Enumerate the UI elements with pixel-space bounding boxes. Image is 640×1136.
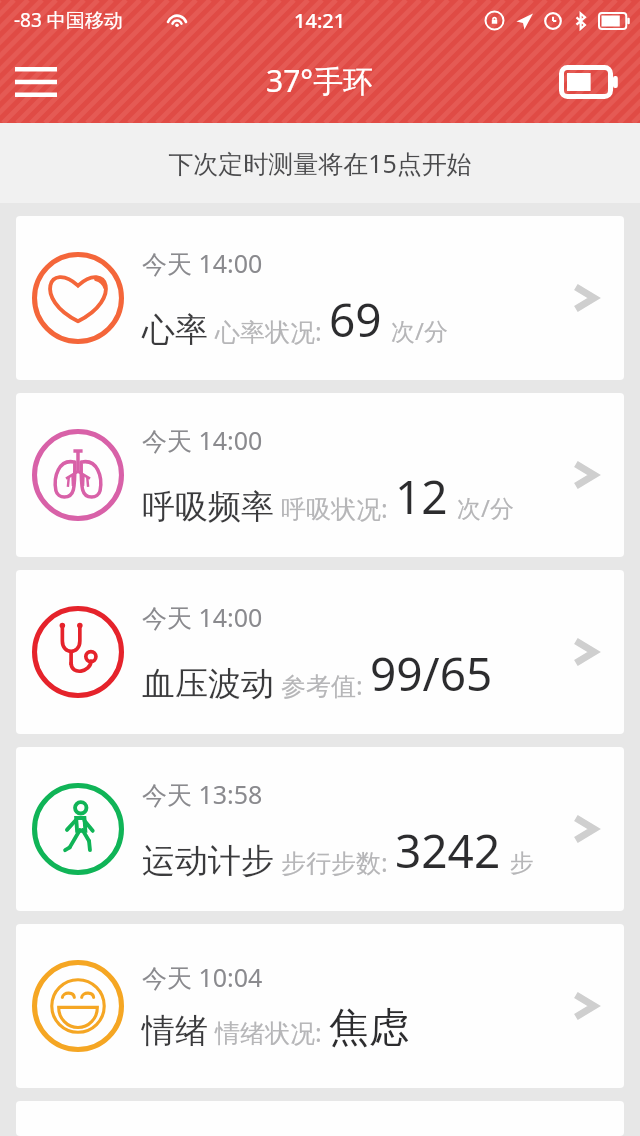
button[interactable]: 今天 14:00 [16, 216, 624, 380]
staticText: 14:21 [294, 7, 346, 34]
staticText: 情绪 [142, 1010, 208, 1052]
staticText: 今天 14:00 [142, 246, 263, 280]
staticText: 心率 [142, 309, 208, 351]
button[interactable]: Battery [550, 52, 628, 112]
staticText: 呼吸频率 [142, 486, 274, 528]
staticText: 运动计步 [142, 840, 274, 882]
staticText: 99/65 [370, 642, 493, 705]
staticText: 参考值: [281, 668, 363, 702]
staticText: 次/分 [391, 314, 448, 347]
staticText: 69 [329, 288, 382, 351]
staticText: 下次定时测量将在15点开始 [168, 146, 472, 180]
staticText: 37°手环 [266, 60, 374, 101]
staticText: 焦虑 [329, 1002, 409, 1052]
staticText: 今天 14:00 [142, 600, 263, 634]
button[interactable]: 今天 10:04 [16, 924, 624, 1088]
staticText: -83 中国移动 [14, 7, 123, 33]
staticText: 次/分 [457, 491, 514, 524]
staticText: 3242 [395, 819, 501, 882]
staticText: 今天 13:58 [142, 777, 263, 811]
staticText: 今天 14:00 [142, 423, 263, 457]
staticText: 12 [395, 465, 448, 528]
button[interactable]: 今天 14:00 [16, 393, 624, 557]
button[interactable]: 今天 14:00 [16, 570, 624, 734]
button[interactable]: 今天 13:58 [16, 747, 624, 911]
staticText: 呼吸状况: [281, 491, 388, 525]
staticText: 步行步数: [281, 845, 388, 879]
staticText: 心率状况: [215, 314, 322, 348]
staticText: 血压波动 [142, 663, 274, 705]
button[interactable]: Menu [0, 46, 72, 118]
staticText: 情绪状况: [215, 1015, 322, 1049]
staticText: 今天 10:04 [142, 960, 263, 994]
staticText: 步 [510, 848, 534, 878]
